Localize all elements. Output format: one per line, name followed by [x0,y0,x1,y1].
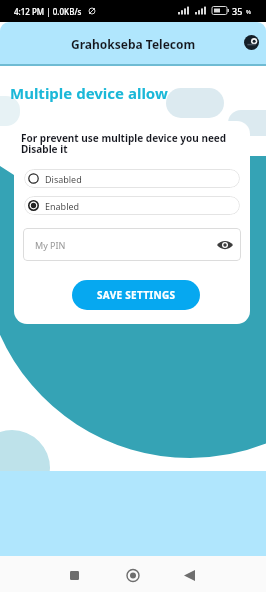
staticText: Multiple device allow [10,83,168,103]
staticText: 4:12 PM | 0.0KB/s [14,6,82,17]
button[interactable]: Disabled [24,169,240,188]
button[interactable]: SAVE SETTINGS [72,280,200,310]
other: Show PIN [217,240,233,250]
staticText: Disabled [45,173,82,185]
staticText: 35 [232,5,243,17]
staticText: % [246,8,251,16]
button[interactable]: My PIN [23,228,241,261]
button[interactable]: Recents [60,559,90,589]
button[interactable]: Home [118,559,148,589]
button[interactable]: Account [244,35,259,50]
staticText: Grahokseba Telecom [71,36,196,52]
staticText: For prevent use multiple device you need… [21,131,227,156]
staticText: Enabled [45,200,80,212]
button[interactable]: Enabled [24,196,240,215]
staticText: My PIN [35,239,66,251]
staticText: SAVE SETTINGS [97,288,176,302]
button[interactable]: Back [175,559,205,589]
